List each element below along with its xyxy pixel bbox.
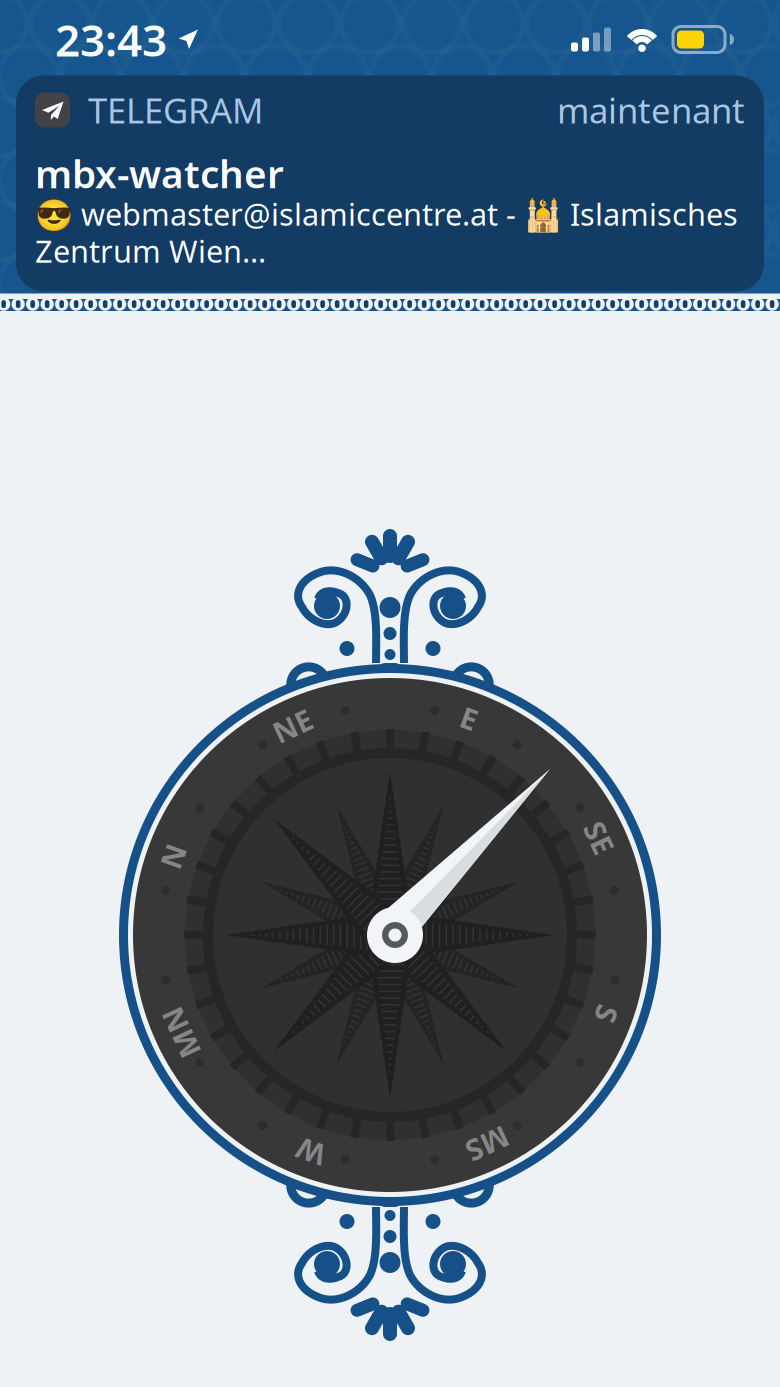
staticText: Zentrum Wien...	[35, 230, 266, 271]
staticText: 23:43	[55, 10, 167, 69]
staticText: TELEGRAM	[88, 87, 263, 133]
staticText: maintenant	[557, 87, 745, 133]
staticText: mbx-watcher	[35, 147, 284, 199]
staticText: 😎 webmaster@islamiccentre.at - 🕌 Islamis…	[35, 193, 738, 234]
button[interactable]: TELEGRAM	[16, 75, 764, 291]
